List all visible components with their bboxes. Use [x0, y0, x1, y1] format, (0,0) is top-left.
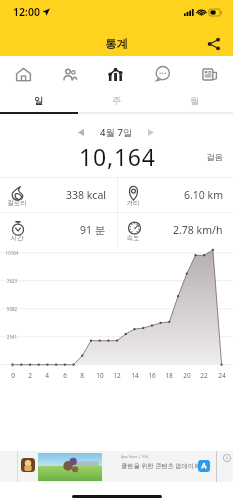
other: App Store: [198, 460, 210, 472]
staticText: 4: [39, 371, 55, 380]
button[interactable]: 거리: [116, 177, 233, 212]
staticText: 칼로리: [3, 199, 31, 207]
button[interactable]: Friends: [46, 58, 92, 90]
staticText: 2.78 km/h: [173, 223, 223, 237]
staticText: 18: [161, 371, 177, 380]
staticText: 0: [4, 362, 20, 368]
staticText: 시간: [3, 234, 31, 242]
staticText: 2541: [4, 334, 20, 340]
button[interactable]: Previous day: [72, 124, 89, 140]
staticText: 속도: [119, 234, 147, 242]
staticText: 8: [74, 371, 90, 380]
staticText: 16: [144, 371, 160, 380]
button[interactable]: 칼로리: [0, 177, 116, 212]
button[interactable]: 속도: [116, 212, 233, 247]
staticText: 10164: [4, 250, 20, 256]
staticText: 22: [196, 371, 212, 380]
staticText: 4월 7일: [100, 126, 133, 139]
staticText: 12: [109, 371, 125, 380]
button[interactable]: 일: [0, 88, 77, 114]
staticText: 338 kcal: [66, 188, 106, 202]
button[interactable]: Chat: [139, 58, 186, 90]
staticText: 10,164: [79, 141, 156, 169]
staticText: 5082: [4, 306, 20, 312]
staticText: 14: [127, 371, 143, 380]
staticText: 클랜을 위한 콘텐츠 업데이트: [121, 461, 201, 469]
staticText: App Store | 게임: [121, 454, 149, 459]
staticText: 91 분: [80, 223, 106, 237]
button[interactable]: 시간: [0, 212, 116, 247]
staticText: 거리: [119, 199, 147, 207]
staticText: 24: [214, 371, 230, 380]
staticText: 월: [190, 95, 199, 106]
staticText: 주: [112, 95, 121, 106]
button[interactable]: Feed: [186, 58, 233, 90]
button[interactable]: 주: [77, 88, 155, 114]
button[interactable]: Home: [0, 58, 46, 90]
staticText: 20: [179, 371, 195, 380]
staticText: 10: [92, 371, 108, 380]
staticText: 0: [5, 371, 21, 380]
staticText: 걸음: [206, 152, 223, 163]
staticText: 7623: [4, 278, 20, 284]
button[interactable]: Ad information: [223, 454, 231, 462]
staticText: 통계: [105, 37, 128, 51]
staticText: 2: [22, 371, 38, 380]
staticText: 일: [34, 95, 43, 106]
button[interactable]: Statistics: [92, 58, 139, 90]
button[interactable]: 월: [155, 88, 233, 114]
button[interactable]: Next day: [142, 124, 159, 140]
staticText: 12:00: [13, 5, 40, 19]
button[interactable]: App Store | 게임: [0, 451, 233, 482]
staticText: 6.10 km: [184, 188, 223, 202]
button[interactable]: Share: [202, 32, 225, 55]
staticText: 6: [57, 371, 73, 380]
